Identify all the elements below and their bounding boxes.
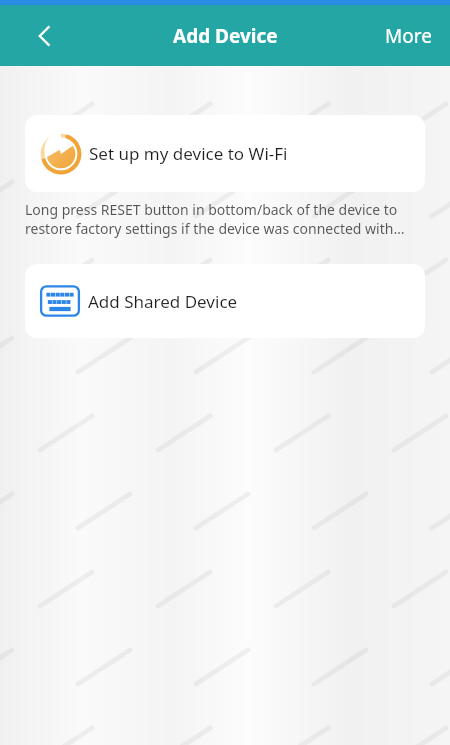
staticText: Add Device xyxy=(173,23,278,49)
staticText: More xyxy=(385,23,432,49)
staticText: Long press RESET button in bottom/back o… xyxy=(25,200,425,238)
staticText: Set up my device to Wi-Fi xyxy=(89,142,288,165)
button[interactable]: More xyxy=(367,11,450,61)
button[interactable]: Back xyxy=(18,8,74,64)
staticText: Add Shared Device xyxy=(88,290,238,313)
button[interactable]: Set up my device to Wi-Fi xyxy=(25,115,425,192)
button[interactable]: Add Shared Device xyxy=(25,264,425,338)
